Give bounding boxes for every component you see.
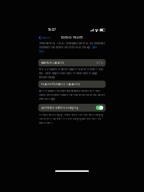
staticText: iPhone batteries, like all rechargeable … (39, 42, 105, 53)
staticText: 87% (96, 61, 103, 64)
staticText: This is a measure of battery capacity re… (39, 68, 103, 79)
staticText: To reduce battery aging, iPhone learns f… (39, 113, 103, 124)
staticText: Maximum Capacity (41, 61, 64, 64)
staticText: 16:07 (48, 28, 56, 32)
button[interactable]: Peak Performance Capability (36, 81, 108, 88)
staticText: Battery Health (61, 36, 83, 39)
button[interactable]: Optimized Battery Charging (96, 105, 103, 110)
button[interactable]: Battery (39, 35, 52, 40)
staticText: Built-in dynamic software and hardware s… (39, 90, 105, 100)
staticText: Optimized Battery Charging (41, 106, 79, 109)
button[interactable]: Maximum Capacity (36, 59, 108, 66)
staticText: Battery (41, 36, 50, 39)
staticText: Peak Performance Capability (41, 83, 80, 86)
